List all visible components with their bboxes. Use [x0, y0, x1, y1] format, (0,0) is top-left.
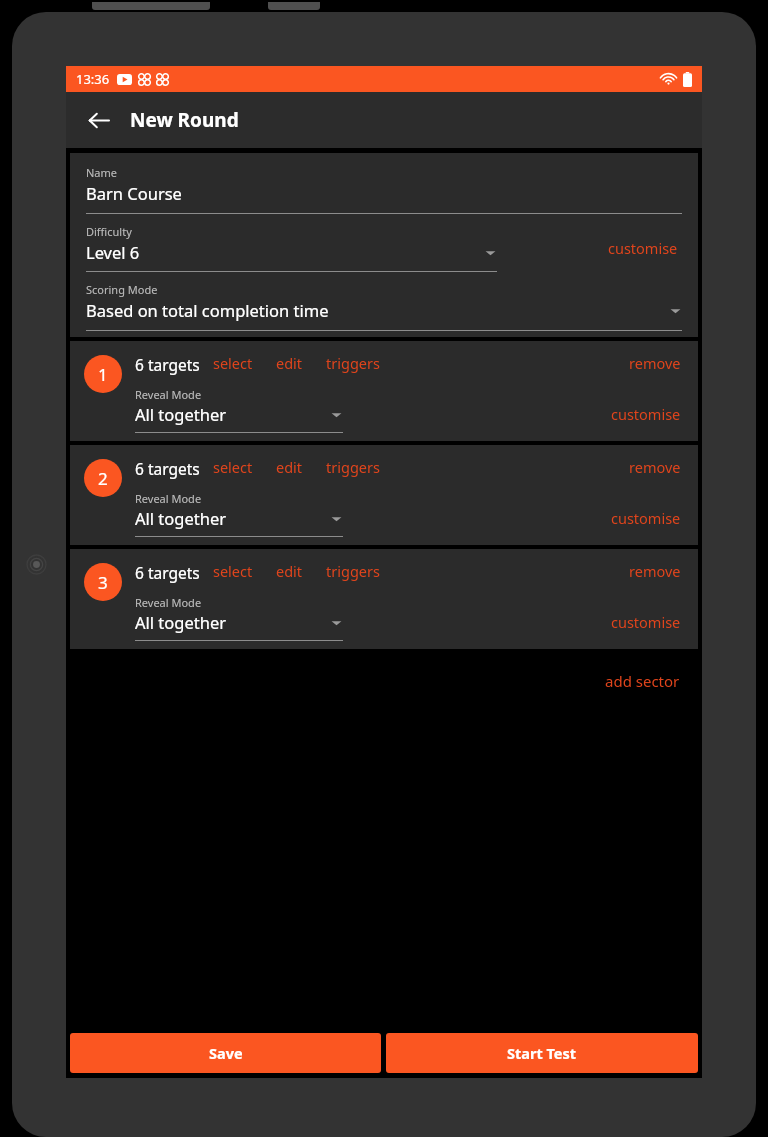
button[interactable]: remove — [626, 351, 684, 375]
button[interactable]: customise — [604, 234, 682, 262]
staticText: 3 — [98, 571, 108, 594]
button[interactable]: customise — [608, 402, 684, 426]
staticText: customise — [608, 238, 678, 258]
staticText: edit — [276, 457, 303, 477]
button[interactable]: remove — [626, 455, 684, 479]
button[interactable]: Start Test — [386, 1033, 698, 1073]
staticText: customise — [611, 508, 681, 528]
staticText: remove — [629, 353, 681, 373]
staticText: Start Test — [507, 1043, 577, 1063]
staticText: 6 targets — [135, 354, 200, 375]
staticText: remove — [629, 457, 681, 477]
staticText: triggers — [326, 457, 380, 477]
staticText: 2 — [98, 467, 108, 490]
button[interactable]: triggers — [323, 455, 383, 479]
staticText: add sector — [605, 671, 680, 691]
button[interactable]: remove — [626, 559, 684, 583]
staticText: edit — [276, 353, 303, 373]
button[interactable]: edit — [273, 559, 306, 583]
staticText: customise — [611, 612, 681, 632]
staticText: All together — [135, 611, 227, 633]
button[interactable]: All together — [135, 611, 343, 633]
button[interactable]: triggers — [323, 351, 383, 375]
staticText: Level 6 — [86, 241, 140, 263]
button[interactable]: edit — [273, 455, 306, 479]
staticText: All together — [135, 403, 227, 425]
staticText: All together — [135, 507, 227, 529]
staticText: remove — [629, 561, 681, 581]
button[interactable]: customise — [608, 610, 684, 634]
staticText: Name — [86, 165, 118, 180]
button[interactable]: All together — [135, 403, 343, 425]
staticText: select — [213, 561, 253, 581]
button[interactable]: customise — [608, 506, 684, 530]
button[interactable]: All together — [135, 507, 343, 529]
button[interactable]: Based on total completion time — [86, 299, 682, 321]
button[interactable]: select — [210, 351, 256, 375]
staticText: customise — [611, 404, 681, 424]
staticText: 1 — [98, 363, 108, 386]
staticText: select — [213, 457, 253, 477]
staticText: edit — [276, 561, 303, 581]
button[interactable]: Save — [70, 1033, 381, 1073]
button[interactable]: triggers — [323, 559, 383, 583]
staticText: 6 targets — [135, 562, 200, 583]
staticText: Based on total completion time — [86, 299, 329, 321]
button[interactable]: Back — [74, 96, 122, 144]
button[interactable]: add sector — [601, 667, 684, 695]
button[interactable]: Level 6 — [86, 241, 497, 263]
button[interactable]: select — [210, 559, 256, 583]
staticText: Barn Course — [86, 182, 182, 204]
staticText: Scoring Mode — [86, 282, 158, 297]
staticText: 13:36 — [76, 70, 110, 88]
staticText: Reveal Mode — [135, 387, 202, 402]
staticText: Difficulty — [86, 224, 132, 239]
staticText: select — [213, 353, 253, 373]
staticText: Reveal Mode — [135, 595, 202, 610]
button[interactable]: select — [210, 455, 256, 479]
staticText: New Round — [130, 107, 239, 133]
staticText: 6 targets — [135, 458, 200, 479]
staticText: Save — [209, 1043, 243, 1063]
staticText: triggers — [326, 561, 380, 581]
button[interactable]: edit — [273, 351, 306, 375]
staticText: triggers — [326, 353, 380, 373]
staticText: Reveal Mode — [135, 491, 202, 506]
